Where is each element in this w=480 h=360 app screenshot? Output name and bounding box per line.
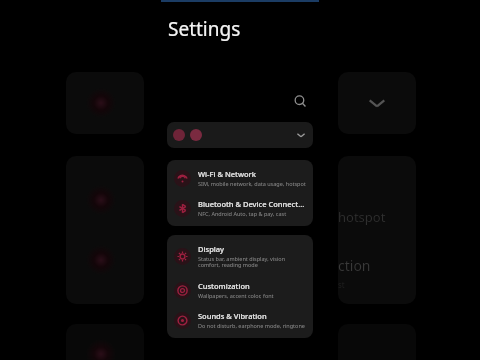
button[interactable]: Bluetooth & Device Connection <box>167 193 313 223</box>
staticText: Display <box>198 244 225 254</box>
staticText: st <box>338 279 345 290</box>
staticText: Settings <box>168 16 241 42</box>
button[interactable]: Sounds & Vibration <box>167 305 313 335</box>
staticText: ction <box>338 256 371 275</box>
button[interactable]: Customization <box>167 275 313 305</box>
button[interactable]: Search settings <box>289 90 311 112</box>
staticText: Do not disturb, earphone mode, ringtone <box>198 322 305 329</box>
staticText: NFC, Android Auto, tap & pay, cast <box>198 210 287 217</box>
button[interactable]: Display <box>167 238 313 275</box>
staticText: Wallpapers, accent color, font <box>198 292 274 299</box>
staticText: Sounds & Vibration <box>198 311 267 321</box>
button[interactable]: Wi-Fi & Network <box>167 163 313 193</box>
staticText: Status bar, ambient display, vision comf… <box>198 255 306 269</box>
staticText: SIM, mobile network, data usage, hotspot <box>198 180 306 187</box>
staticText: hotspot <box>338 208 386 226</box>
staticText: Customization <box>198 281 250 291</box>
button[interactable] <box>167 122 313 148</box>
staticText: Wi-Fi & Network <box>198 169 256 179</box>
staticText: Bluetooth & Device Connection <box>198 199 306 209</box>
